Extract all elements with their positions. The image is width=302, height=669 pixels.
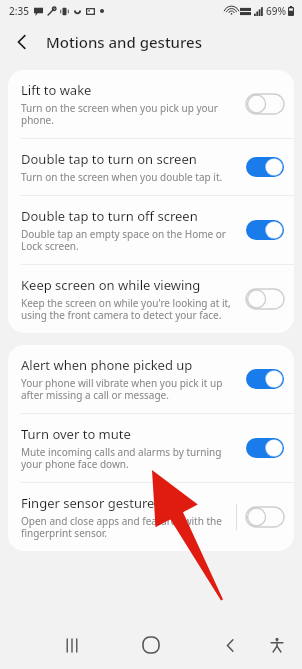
staticText: Finger sensor gestures	[21, 494, 161, 512]
button[interactable]: Off	[246, 94, 284, 114]
staticText: Open and close apps and features with th…	[21, 514, 228, 540]
staticText: Your phone will vibrate when you pick it…	[21, 376, 238, 402]
staticText: Alert when phone picked up	[21, 356, 193, 374]
button[interactable]: Recents	[52, 625, 92, 665]
button[interactable]: Back	[210, 625, 250, 665]
button[interactable]: On	[246, 438, 284, 458]
staticText: 69%	[266, 4, 286, 18]
button[interactable]: On	[246, 369, 284, 389]
button[interactable]: Back	[6, 26, 38, 58]
button[interactable]: Off	[246, 289, 284, 309]
button[interactable]: On	[246, 157, 284, 177]
staticText: Turn on the screen when you double tap i…	[21, 170, 223, 184]
staticText: Mute incoming calls and alarms by turnin…	[21, 445, 238, 471]
staticText: Keep screen on while viewing	[21, 276, 201, 294]
staticText: Double tap to turn off screen	[21, 207, 198, 225]
button[interactable]: Off	[246, 507, 284, 527]
button[interactable]: Turn over to mute	[8, 414, 294, 482]
button[interactable]: Double tap to turn on screen	[8, 139, 294, 195]
button[interactable]: Double tap to turn off screen	[8, 196, 294, 264]
staticText: Turn on the screen when you pick up your…	[21, 101, 238, 127]
button[interactable]: On	[246, 220, 284, 240]
staticText: Turn over to mute	[21, 425, 131, 443]
button[interactable]: Accessibility	[260, 628, 294, 662]
staticText: Lift to wake	[21, 81, 92, 99]
staticText: Motions and gestures	[46, 32, 202, 52]
button[interactable]: Lift to wake	[8, 70, 294, 138]
button[interactable]: Alert when phone picked up	[8, 345, 294, 413]
button[interactable]: Keep screen on while viewing	[8, 265, 294, 333]
button[interactable]: Finger sensor gestures	[8, 483, 294, 551]
staticText: 2:35	[9, 4, 29, 18]
staticText: Double tap to turn on screen	[21, 150, 197, 168]
staticText: Keep the screen on while you're looking …	[21, 296, 238, 322]
staticText: Double tap an empty space on the Home or…	[21, 227, 238, 253]
button[interactable]: Home	[131, 625, 171, 665]
